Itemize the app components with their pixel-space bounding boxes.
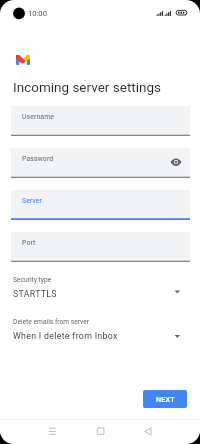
button[interactable]: Username [11,106,190,136]
button[interactable]: NEXT [143,390,187,408]
staticText: Delete emails from server [13,318,90,326]
staticText: Password [22,155,54,163]
button[interactable]: Recents [42,419,62,444]
button[interactable]: Home [90,419,110,444]
button[interactable]: Back [138,419,158,444]
button[interactable]: Port [11,232,190,262]
staticText: When I delete from Inbox [13,331,118,341]
button[interactable]: Security type [0,276,200,302]
button[interactable]: Show password [169,155,184,170]
staticText: 10:00 [28,9,47,18]
button[interactable]: Server [11,190,190,220]
staticText: NEXT [156,395,175,403]
staticText: Security type [13,276,52,284]
staticText: Port [22,239,36,247]
button[interactable]: Delete emails from server [0,318,200,344]
staticText: Server [22,197,43,205]
staticText: Incoming server settings [13,79,161,95]
staticText: Username [22,113,55,121]
staticText: STARTTLS [13,289,57,299]
button[interactable]: Password [11,148,190,178]
